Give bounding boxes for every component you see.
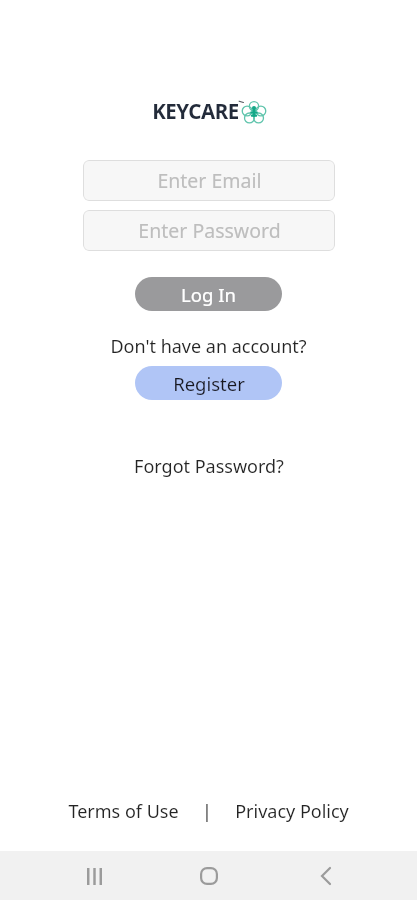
staticText: Forgot Password? <box>134 454 284 479</box>
button[interactable]: Recent apps <box>70 852 118 900</box>
staticText: Don't have an account? <box>110 334 307 359</box>
button[interactable]: Enter Email <box>83 160 335 201</box>
staticText: KEYCARE <box>152 97 239 125</box>
button[interactable]: Register <box>135 366 282 400</box>
button[interactable]: Terms of Use <box>60 793 187 830</box>
staticText: Enter Password <box>138 217 281 244</box>
button[interactable]: Log In <box>135 277 282 311</box>
staticText: Terms of Use <box>68 799 179 824</box>
button[interactable]: Home <box>185 852 233 900</box>
button[interactable]: Enter Password <box>83 210 335 251</box>
staticText: Privacy Policy <box>235 799 349 824</box>
button[interactable]: Back <box>302 852 350 900</box>
button[interactable]: Privacy Policy <box>227 793 357 830</box>
staticText: | <box>202 799 212 824</box>
button[interactable]: Forgot Password? <box>124 448 294 485</box>
staticText: Register <box>173 371 245 396</box>
staticText: Enter Email <box>157 167 262 194</box>
staticText: Log In <box>181 282 236 307</box>
